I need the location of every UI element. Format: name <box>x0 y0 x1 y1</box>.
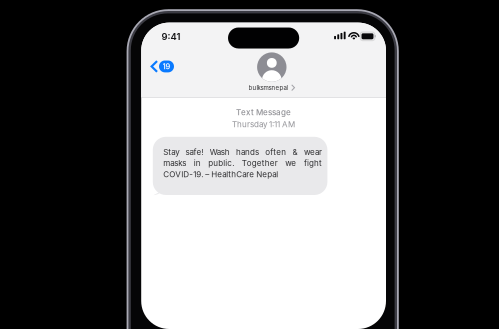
staticText: 9:41 <box>161 31 180 42</box>
staticText: public. <box>208 158 234 168</box>
staticText: Stay <box>163 147 179 157</box>
staticText: bulksmsnepal <box>248 84 287 91</box>
staticText: we <box>285 158 296 168</box>
staticText: wear <box>304 147 322 157</box>
staticText: Text Message <box>236 108 291 117</box>
staticText: fight <box>304 158 322 168</box>
staticText: masks <box>163 158 186 168</box>
staticText: COVID-19. – HealthCare Nepal <box>163 170 278 179</box>
button[interactable]: Back to Messages, 19 unread <box>141 52 184 81</box>
staticText: Together <box>242 158 278 168</box>
staticText: & <box>293 147 298 157</box>
staticText: often <box>265 147 286 157</box>
button[interactable]: bulksmsnepal, contact info <box>243 52 300 94</box>
staticText: in <box>194 158 201 168</box>
staticText: Wash <box>210 147 230 157</box>
staticText: hands <box>236 147 259 157</box>
staticText: safe! <box>185 147 203 157</box>
staticText: 19 <box>162 62 170 71</box>
staticText: Thursday 1:11 AM <box>232 119 295 129</box>
